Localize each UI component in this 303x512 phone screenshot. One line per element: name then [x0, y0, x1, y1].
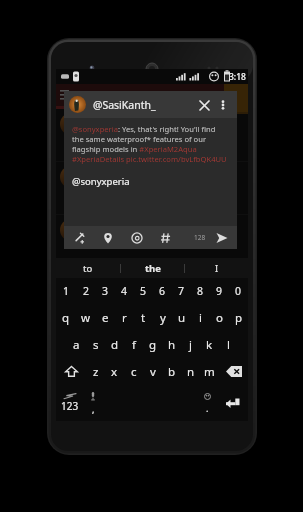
- button[interactable]: Voice input: [83, 385, 102, 421]
- staticText: 9: [216, 284, 223, 298]
- staticText: 5: [140, 284, 147, 298]
- button[interactable]: the: [121, 258, 184, 278]
- button[interactable]: Profile picture: [69, 96, 86, 113]
- button[interactable]: More options: [214, 96, 232, 114]
- staticText: to: [83, 262, 93, 275]
- staticText: g: [149, 337, 157, 353]
- staticText: 2: [83, 284, 90, 298]
- button[interactable]: Shift: [56, 358, 86, 385]
- button[interactable]: 7: [172, 278, 191, 304]
- staticText: p: [235, 310, 243, 326]
- staticText: 128: [194, 233, 206, 242]
- staticText: 8: [197, 284, 204, 298]
- staticText: 4: [121, 284, 128, 298]
- button[interactable]: f: [124, 331, 143, 358]
- staticText: l: [227, 337, 230, 353]
- staticText: o: [216, 310, 223, 326]
- button[interactable]: Emoji: [196, 385, 218, 421]
- staticText: @sonyxperia: Yes, that's right! You'll f…: [72, 124, 229, 164]
- button[interactable]: 2: [76, 278, 96, 304]
- button[interactable]: x: [105, 358, 124, 385]
- staticText: u: [178, 310, 186, 326]
- button[interactable]: y: [153, 304, 172, 331]
- staticText: a: [73, 337, 80, 353]
- staticText: b: [168, 364, 176, 380]
- staticText: j: [189, 337, 192, 353]
- button[interactable]: n: [181, 358, 200, 385]
- button[interactable]: Attach photo: [70, 229, 87, 246]
- staticText: 1: [63, 284, 70, 298]
- button[interactable]: 5: [134, 278, 153, 304]
- button[interactable]: Send tweet: [213, 229, 231, 247]
- staticText: v: [150, 364, 156, 380]
- staticText: w: [81, 310, 91, 326]
- staticText: @SasiKanth_: [93, 98, 194, 112]
- staticText: z: [93, 364, 99, 380]
- staticText: q: [62, 310, 70, 326]
- staticText: s: [93, 337, 99, 353]
- staticText: @sonyxperia: [72, 175, 229, 188]
- staticText: i: [199, 310, 202, 326]
- staticText: I: [215, 262, 219, 275]
- button[interactable]: g: [143, 331, 162, 358]
- button[interactable]: t: [134, 304, 153, 331]
- staticText: e: [102, 310, 109, 326]
- staticText: 0: [235, 284, 242, 298]
- button[interactable]: b: [162, 358, 181, 385]
- button[interactable]: k: [200, 331, 219, 358]
- button[interactable]: o: [210, 304, 229, 331]
- button[interactable]: 4: [115, 278, 134, 304]
- button[interactable]: to: [56, 258, 120, 278]
- button[interactable]: Add location: [99, 229, 116, 246]
- staticText: r: [122, 310, 127, 326]
- staticText: 6: [159, 284, 166, 298]
- staticText: t: [141, 310, 146, 326]
- button[interactable]: Symbols: [56, 385, 83, 421]
- staticText: .: [206, 402, 209, 414]
- staticText: 3: [102, 284, 109, 298]
- button[interactable]: v: [143, 358, 162, 385]
- button[interactable]: 1: [56, 278, 76, 304]
- staticText: k: [206, 337, 213, 353]
- button[interactable]: q: [56, 304, 76, 331]
- button[interactable]: Hashtag: [157, 229, 174, 246]
- button[interactable]: 8: [191, 278, 210, 304]
- staticText: ,: [92, 403, 95, 415]
- button[interactable]: d: [105, 331, 124, 358]
- button[interactable]: e: [96, 304, 115, 331]
- button[interactable]: i: [191, 304, 210, 331]
- button[interactable]: s: [86, 331, 105, 358]
- button[interactable]: u: [172, 304, 191, 331]
- button[interactable]: 0: [229, 278, 248, 304]
- button[interactable]: Mention: [128, 229, 145, 246]
- staticText: h: [168, 337, 176, 353]
- staticText: x: [111, 364, 118, 380]
- button[interactable]: 6: [153, 278, 172, 304]
- staticText: n: [187, 364, 195, 380]
- button[interactable]: h: [162, 331, 181, 358]
- button[interactable]: z: [86, 358, 105, 385]
- staticText: c: [131, 364, 137, 380]
- staticText: 123: [61, 399, 79, 413]
- button[interactable]: 3: [96, 278, 115, 304]
- button[interactable]: Enter: [218, 385, 248, 421]
- button[interactable]: p: [229, 304, 248, 331]
- button[interactable]: r: [115, 304, 134, 331]
- staticText: 7: [178, 284, 185, 298]
- staticText: the: [145, 262, 161, 275]
- staticText: d: [111, 337, 119, 353]
- button[interactable]: a: [67, 331, 86, 358]
- button[interactable]: c: [124, 358, 143, 385]
- button[interactable]: w: [76, 304, 96, 331]
- button[interactable]: Close: [194, 95, 214, 115]
- staticText: f: [132, 337, 136, 353]
- button[interactable]: m: [200, 358, 219, 385]
- staticText: m: [204, 364, 215, 380]
- button[interactable]: 9: [210, 278, 229, 304]
- button[interactable]: j: [181, 331, 200, 358]
- button[interactable]: Backspace: [219, 358, 248, 385]
- button[interactable]: I: [185, 258, 248, 278]
- button[interactable]: l: [219, 331, 238, 358]
- staticText: 3:18: [229, 71, 246, 83]
